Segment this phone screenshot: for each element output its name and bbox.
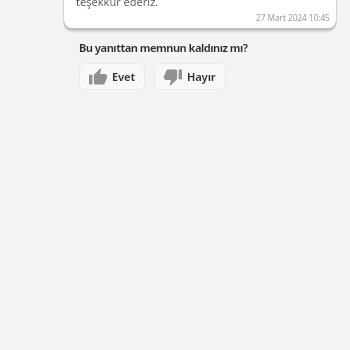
button[interactable]: Hayır — [154, 63, 226, 90]
staticText: teşekkür ederiz. — [76, 0, 159, 9]
staticText: Bu yanıttan memnun kaldınız mı? — [79, 40, 248, 55]
staticText: Hayır — [187, 69, 216, 84]
button[interactable]: Evet — [79, 63, 145, 90]
staticText: Evet — [112, 69, 135, 84]
staticText: 27 Mart 2024 10:45 — [256, 12, 330, 23]
